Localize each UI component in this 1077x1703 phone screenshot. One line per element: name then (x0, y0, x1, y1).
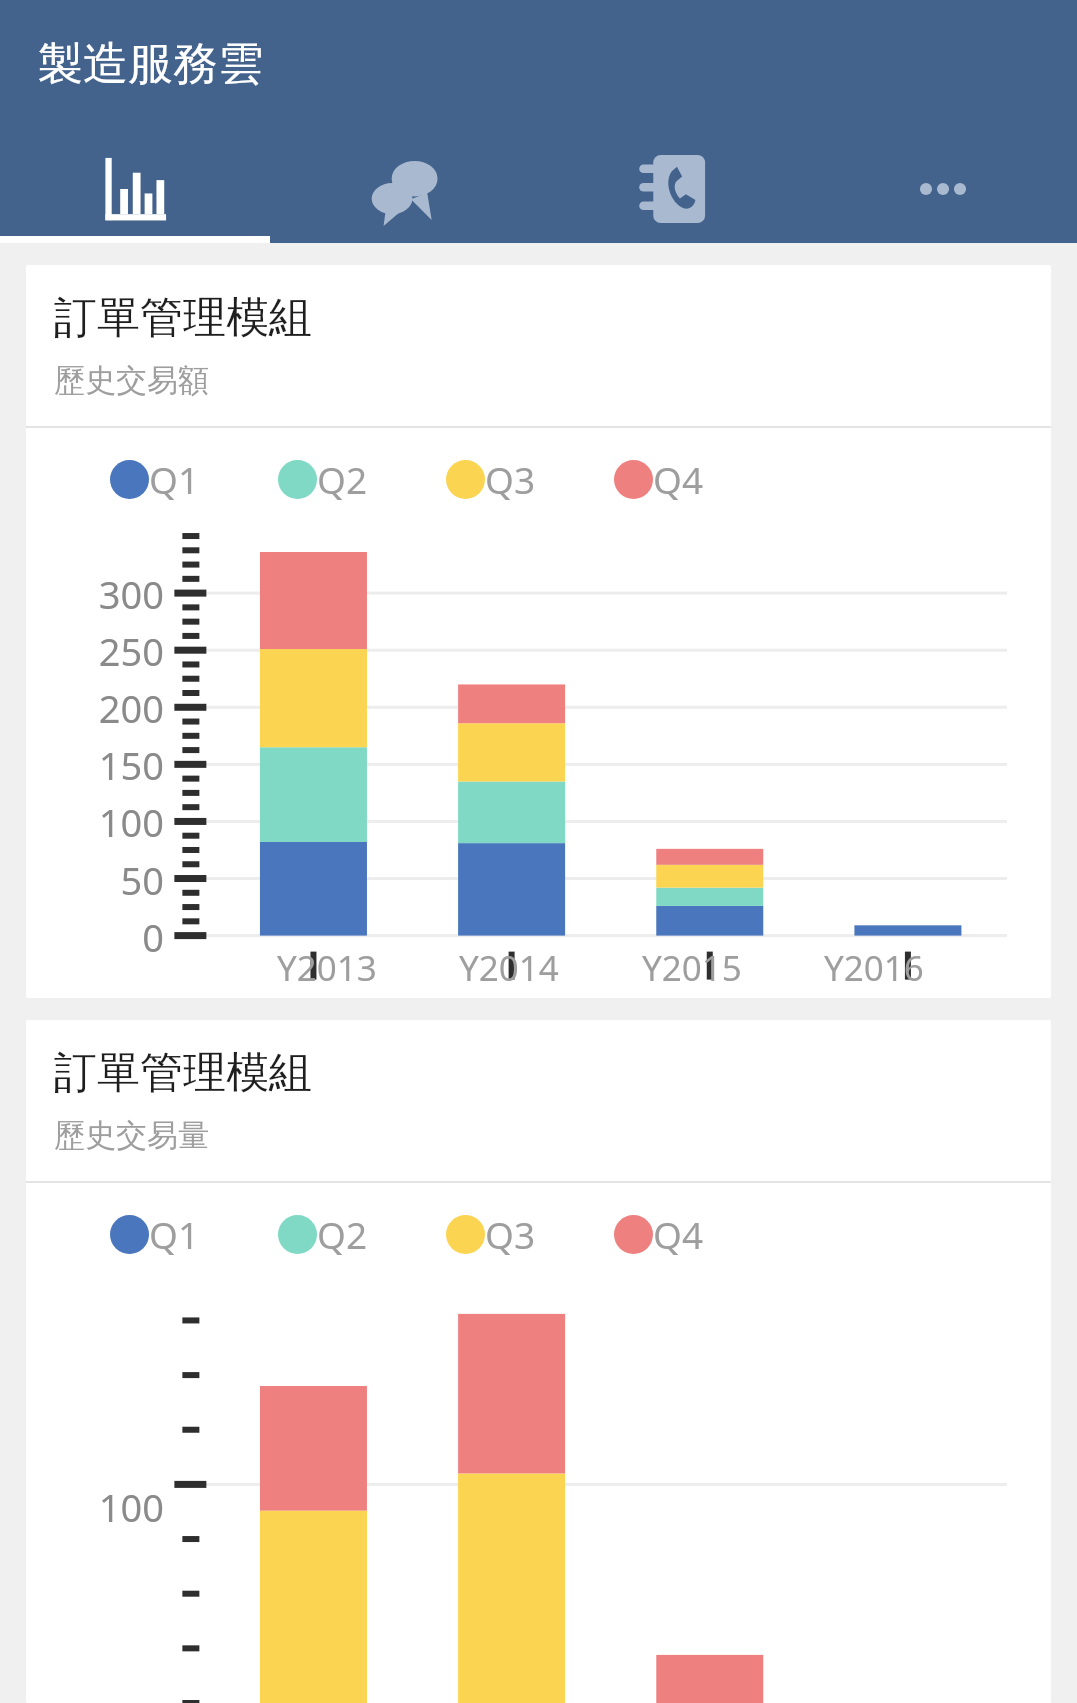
button[interactable]: 訂單管理模組 (26, 1020, 1051, 1703)
staticText: 製造服務雲 (38, 36, 263, 93)
button[interactable]: Q2 (278, 1209, 368, 1259)
staticText: Y2013 (277, 944, 377, 992)
staticText: 歷史交易額 (54, 361, 209, 400)
staticText: 100 (26, 796, 164, 848)
staticText: Q3 (485, 454, 536, 504)
button[interactable]: Q3 (446, 1209, 536, 1259)
staticText: Y2016 (824, 944, 924, 992)
staticText: Q2 (317, 454, 368, 504)
button[interactable]: Q1 (110, 454, 200, 504)
staticText: Q4 (653, 1209, 704, 1259)
staticText: 150 (26, 739, 164, 791)
button[interactable]: Q1 (110, 1209, 200, 1259)
button[interactable]: Q4 (614, 454, 704, 504)
staticText: 0 (26, 911, 164, 963)
button[interactable]: More options (808, 145, 1077, 243)
staticText: Y2014 (459, 944, 559, 992)
button[interactable]: Dashboard (0, 145, 270, 243)
button[interactable]: Contacts (539, 145, 808, 243)
button[interactable]: 訂單管理模組 (26, 265, 1051, 998)
staticText: 200 (26, 682, 164, 734)
staticText: Q4 (653, 454, 704, 504)
button[interactable]: Q2 (278, 454, 368, 504)
staticText: 300 (26, 568, 164, 620)
button[interactable]: Q3 (446, 454, 536, 504)
staticText: 歷史交易量 (54, 1116, 209, 1155)
staticText: Q3 (485, 1209, 536, 1259)
staticText: Q1 (149, 1209, 200, 1259)
staticText: Q2 (317, 1209, 368, 1259)
button[interactable]: Messages (270, 145, 539, 243)
staticText: Y2015 (642, 944, 742, 992)
staticText: Q1 (149, 454, 200, 504)
staticText: 訂單管理模組 (54, 291, 312, 345)
staticText: 250 (26, 625, 164, 677)
staticText: 50 (26, 854, 164, 906)
staticText: 100 (26, 1481, 164, 1533)
button[interactable]: Q4 (614, 1209, 704, 1259)
staticText: 訂單管理模組 (54, 1046, 312, 1100)
